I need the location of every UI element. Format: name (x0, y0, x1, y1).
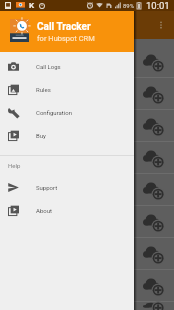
staticText: Configuration (36, 109, 72, 116)
staticText: Buy (36, 132, 46, 139)
button[interactable] (0, 302, 174, 310)
staticText: 10:01 (146, 0, 170, 11)
staticText: 89% (123, 2, 135, 9)
staticText: Call Tracker (37, 21, 91, 33)
button[interactable] (0, 110, 174, 141)
staticText: Rules (36, 86, 51, 93)
button[interactable] (0, 46, 174, 77)
button[interactable] (0, 206, 174, 237)
button[interactable] (0, 174, 174, 205)
button[interactable] (0, 78, 174, 109)
button[interactable]: Buy (0, 124, 134, 147)
button[interactable]: Rules (0, 78, 134, 101)
button[interactable]: More options (153, 17, 169, 33)
button[interactable]: Call Logs (0, 55, 134, 78)
button[interactable]: Configuration (0, 101, 134, 124)
staticText: Call Logs (36, 63, 61, 70)
button[interactable] (0, 142, 174, 173)
staticText: Help (8, 162, 21, 169)
button[interactable]: Support (0, 176, 134, 199)
staticText: About (36, 207, 52, 214)
staticText: for Hubspot CRM (37, 34, 95, 43)
button[interactable] (0, 270, 174, 301)
button[interactable]: About (0, 199, 134, 222)
staticText: K (29, 1, 35, 10)
staticText: Support (36, 184, 58, 191)
button[interactable] (0, 238, 174, 269)
